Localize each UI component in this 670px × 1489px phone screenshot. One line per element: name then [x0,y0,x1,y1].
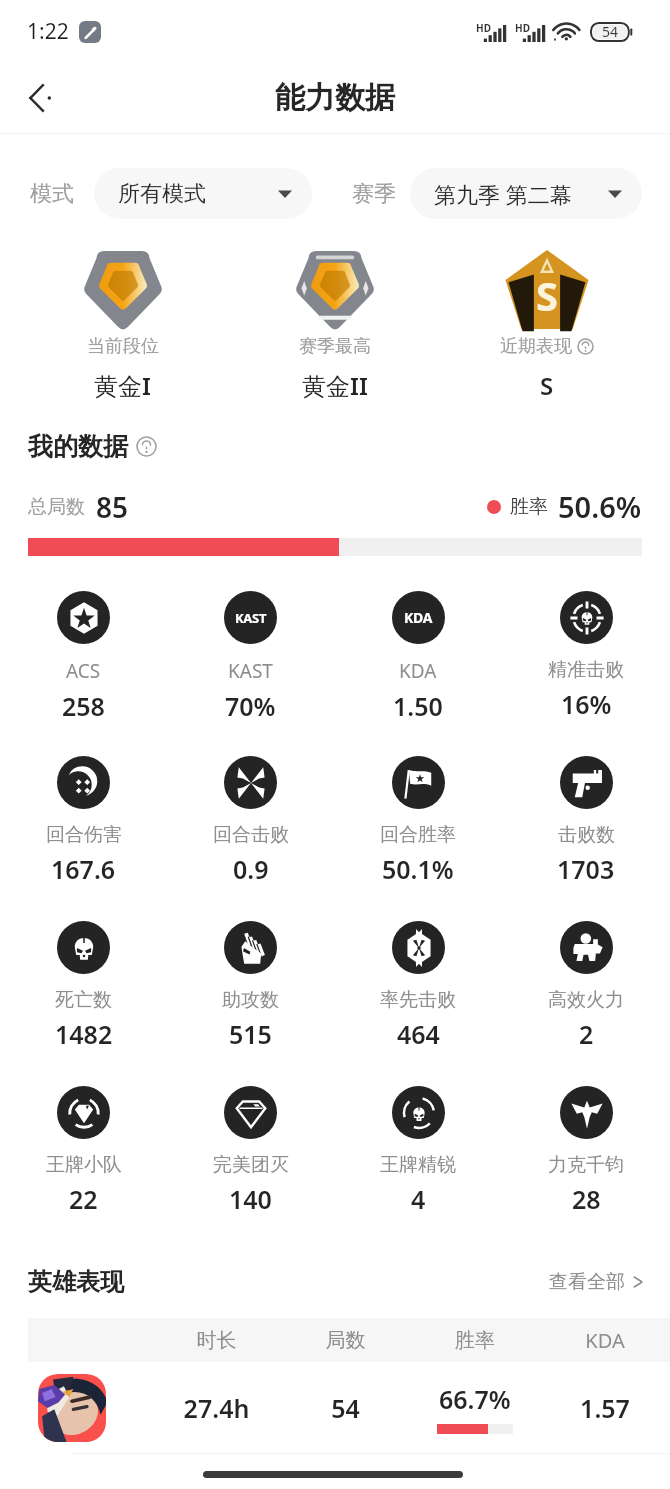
staticText: 总局数 [28,495,85,519]
button[interactable]: 回合胜率 [334,750,502,915]
staticText: 50.1% [382,852,454,886]
staticText: 85 [96,488,129,526]
staticText: 王牌小队 [46,1153,122,1177]
button[interactable]: ACS [0,585,167,750]
staticText: 近期表现 [500,335,572,358]
button[interactable]: Back [12,69,70,127]
staticText: HD [476,21,491,35]
staticText: 回合击败 [213,823,289,847]
staticText: 54 [281,1391,410,1425]
staticText: KAST [235,609,267,627]
staticText: 力克千钧 [548,1153,624,1177]
staticText: 464 [397,1017,440,1051]
button[interactable]: KDA [334,585,502,750]
button[interactable]: 死亡数 [0,915,167,1080]
staticText: 黄金I [94,369,151,402]
staticText: 王牌精锐 [380,1153,456,1177]
staticText: 模式 [30,180,74,208]
staticText: 4 [411,1182,426,1216]
button[interactable]: 27.4h [0,1362,670,1453]
button[interactable]: 完美团灭 [167,1080,334,1245]
button[interactable]: 所有模式 [94,168,312,219]
staticText: 回合伤害 [46,823,122,847]
staticText: 258 [62,689,105,723]
button[interactable]: 赛季最高 [229,248,441,402]
staticText: 精准击败 [548,658,624,682]
button[interactable]: 查看全部 [545,1264,648,1300]
staticText: 完美团灭 [213,1153,289,1177]
staticText: 英雄表现 [28,1267,124,1297]
button[interactable]: 助攻数 [167,915,334,1080]
button[interactable]: 回合伤害 [0,750,167,915]
staticText: 22 [69,1182,98,1216]
staticText: 第九季 第二幕 [434,179,572,209]
staticText: 我的数据 [28,431,128,462]
staticText: 1703 [557,852,615,886]
staticText: 66.7% [439,1382,511,1416]
staticText: 515 [229,1017,272,1051]
button[interactable]: 第九季 第二幕 [410,168,642,219]
staticText: KDA [399,658,437,684]
staticText: 1482 [55,1017,113,1051]
staticText: S [536,268,559,322]
staticText: 1.57 [540,1391,670,1425]
staticText: 54 [602,22,619,41]
staticText: 1:22 [27,17,69,46]
button[interactable]: 王牌精锐 [334,1080,502,1245]
staticText: 167.6 [51,852,116,886]
staticText: 高效火力 [548,988,624,1012]
staticText: 1.50 [393,689,443,723]
staticText: 2 [579,1017,594,1051]
staticText: HD [515,21,530,35]
staticText: 赛季 [352,180,396,208]
staticText: 查看全部 [549,1270,625,1294]
staticText: 当前段位 [87,335,159,358]
staticText: 时长 [152,1328,281,1353]
staticText: KDA [540,1327,670,1354]
staticText: 胜率 [410,1328,540,1353]
button[interactable]: 精准击败 [502,585,670,750]
staticText: 27.4h [152,1391,281,1425]
button[interactable]: 当前段位 [16,248,229,402]
button[interactable]: KAST [167,585,334,750]
staticText: 16% [561,687,612,721]
staticText: 70% [225,689,276,723]
button[interactable]: S [441,248,653,402]
staticText: 胜率 [510,495,548,519]
staticText: 50.6% [558,487,642,526]
staticText: 击败数 [558,823,615,847]
button[interactable]: 回合击败 [167,750,334,915]
staticText: ACS [66,658,101,684]
staticText: 死亡数 [55,988,112,1012]
staticText: 黄金II [302,369,368,402]
staticText: S [540,369,554,402]
staticText: 率先击败 [380,988,456,1012]
staticText: 28 [572,1182,601,1216]
staticText: 局数 [281,1328,410,1353]
staticText: 回合胜率 [380,823,456,847]
staticText: 助攻数 [222,988,279,1012]
staticText: 140 [229,1182,272,1216]
staticText: KDA [404,608,433,627]
button[interactable]: 击败数 [502,750,670,915]
button[interactable]: 王牌小队 [0,1080,167,1245]
staticText: 0.9 [233,852,269,886]
button[interactable]: 率先击败 [334,915,502,1080]
staticText: 赛季最高 [299,335,371,358]
staticText: 所有模式 [118,180,206,208]
staticText: 能力数据 [275,79,395,117]
staticText: KAST [228,658,273,684]
button[interactable]: 力克千钧 [502,1080,670,1245]
button[interactable]: 高效火力 [502,915,670,1080]
